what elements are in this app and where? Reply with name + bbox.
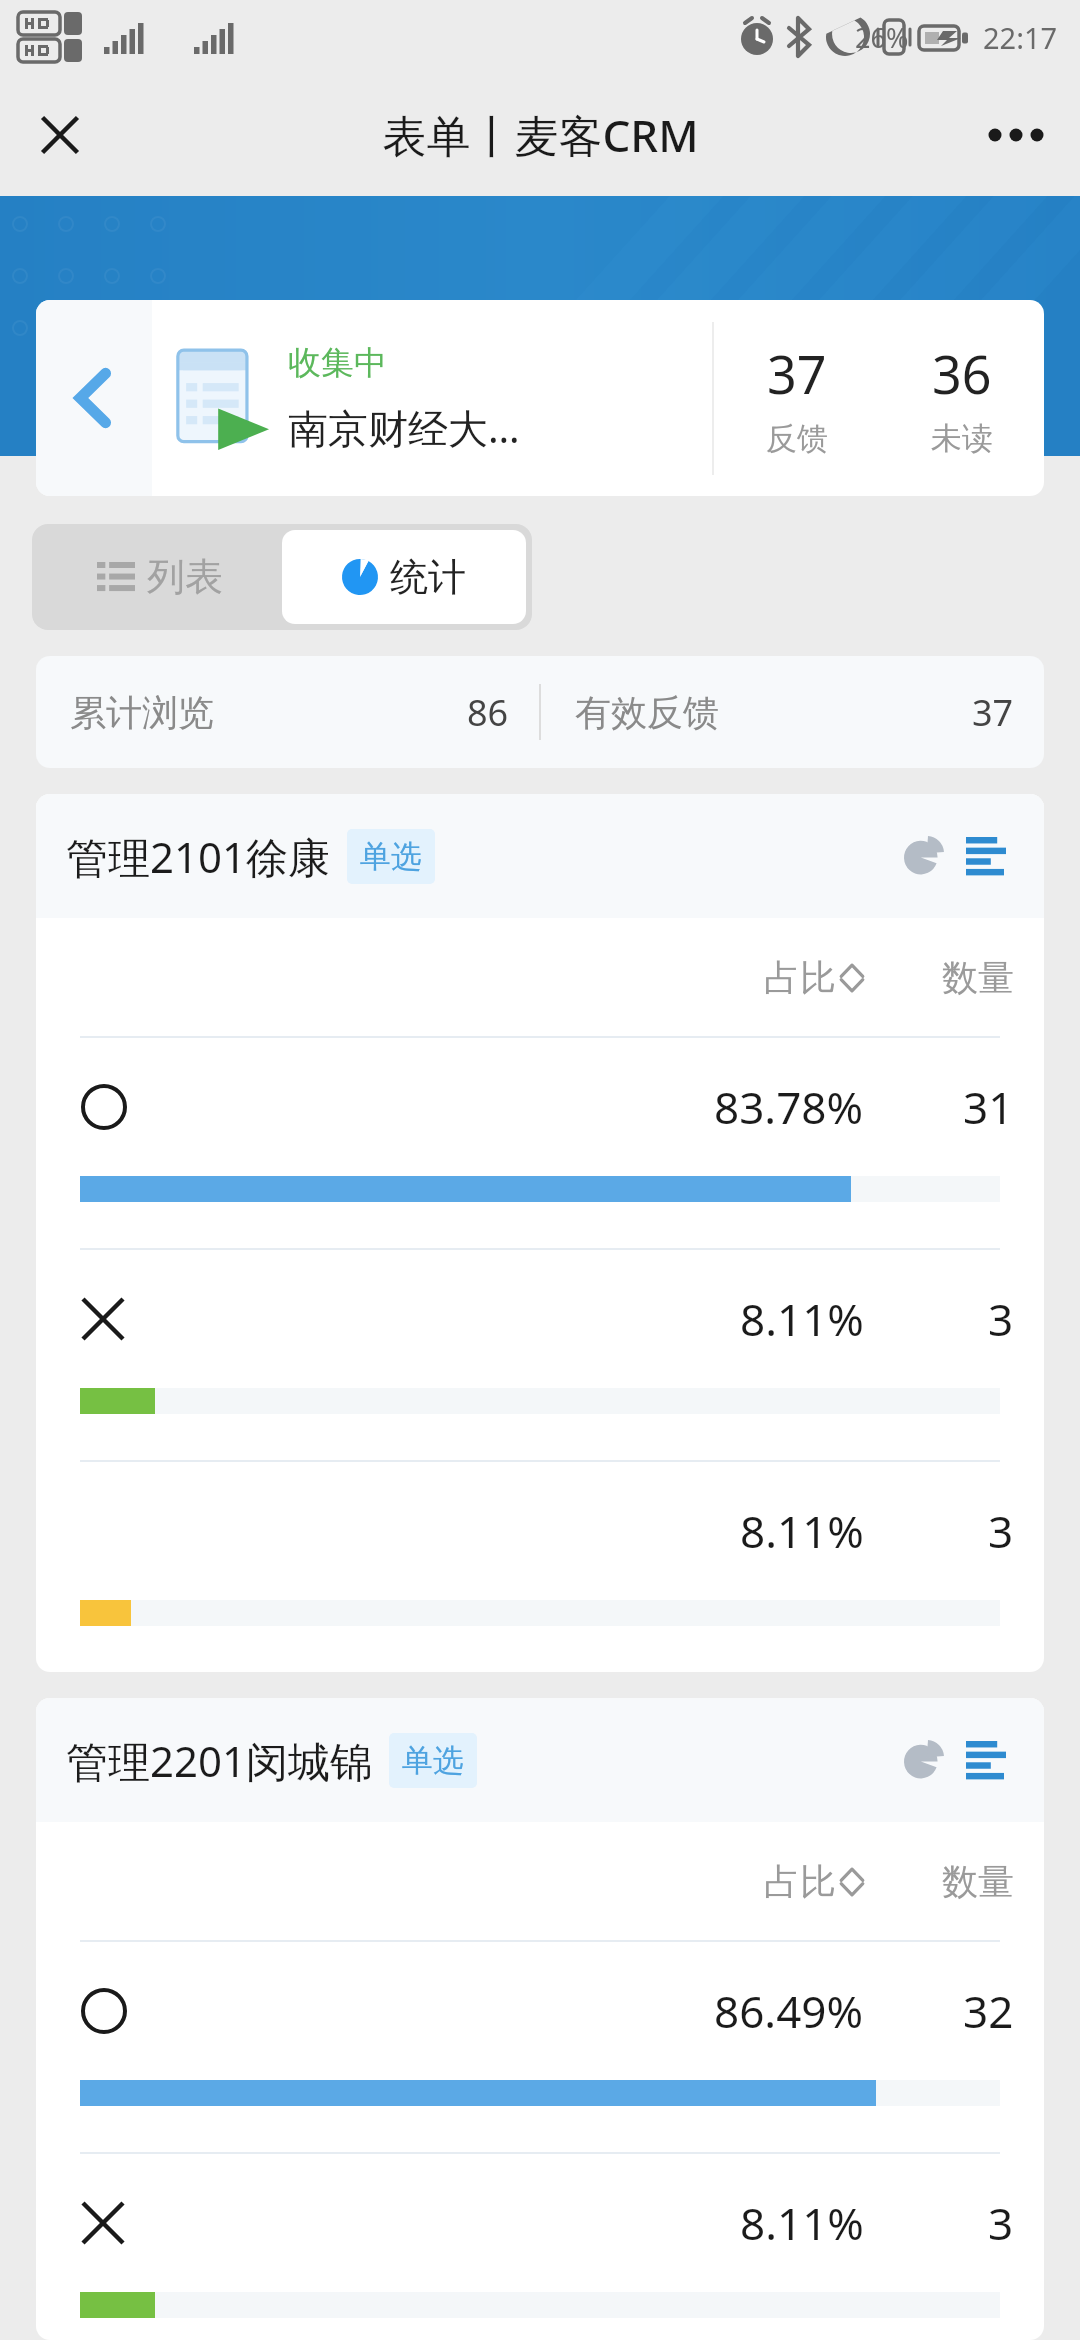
staticText: 单选 (360, 837, 422, 876)
button[interactable]: 8.11% (36, 1462, 1044, 1672)
button[interactable]: 管理2201闵城锦 (66, 1698, 1014, 1822)
button[interactable]: 37 (714, 300, 879, 496)
staticText: 表单丨麦客CRM (382, 105, 699, 165)
staticText: 86 (467, 688, 509, 737)
staticText: 数量 (942, 955, 1014, 1000)
staticText: 32 (963, 1981, 1014, 2041)
staticText: 26% (855, 19, 909, 56)
button[interactable]: Bar chart view (958, 1732, 1014, 1788)
staticText: 3 (988, 1289, 1014, 1349)
button[interactable]: 累计浏览 (36, 656, 539, 768)
staticText: 36 (932, 338, 992, 409)
button[interactable]: 8.11% (36, 2154, 1044, 2340)
button[interactable]: Pie chart view (896, 1732, 952, 1788)
staticText: 37 (767, 338, 827, 409)
button[interactable]: 列表 (38, 530, 282, 624)
button[interactable]: 统计 (282, 530, 526, 624)
staticText: 占比 (764, 1859, 836, 1904)
button[interactable]: Bar chart view (958, 828, 1014, 884)
button[interactable]: Back (36, 300, 152, 496)
staticText: 累计浏览 (70, 690, 214, 735)
button[interactable]: 8.11% (36, 1250, 1044, 1460)
button[interactable]: Close (22, 97, 98, 173)
staticText: 31 (963, 1077, 1014, 1137)
staticText: 3 (988, 2193, 1014, 2253)
staticText: 数量 (942, 1859, 1014, 1904)
button[interactable]: 有效反馈 (541, 656, 1044, 768)
staticText: 占比 (764, 955, 836, 1000)
staticText: 8.11% (740, 1501, 864, 1561)
staticText: 37 (972, 688, 1014, 737)
button[interactable]: Pie chart view (896, 828, 952, 884)
staticText: 收集中 (288, 342, 387, 384)
button[interactable]: 管理2101徐康 (66, 794, 1014, 918)
staticText: 有效反馈 (575, 690, 719, 735)
staticText: 8.11% (740, 2193, 864, 2253)
button[interactable]: 86.49% (36, 1942, 1044, 2152)
staticText: 管理2201闵城锦 (66, 1732, 373, 1789)
button[interactable]: 36 (879, 300, 1044, 496)
staticText: 83.78% (714, 1077, 864, 1137)
staticText: 8.11% (740, 1289, 864, 1349)
staticText: 统计 (390, 553, 466, 601)
staticText: 反馈 (766, 419, 828, 458)
staticText: 单选 (402, 1741, 464, 1780)
staticText: 22:17 (983, 18, 1058, 57)
staticText: 列表 (147, 553, 223, 601)
button[interactable]: More options (976, 95, 1056, 175)
button[interactable]: Back (36, 300, 1044, 496)
button[interactable]: 占比 (634, 1859, 864, 1904)
button[interactable]: 占比 (634, 955, 864, 1000)
staticText: 未读 (931, 419, 993, 458)
staticText: 管理2101徐康 (66, 828, 331, 885)
button[interactable]: 83.78% (36, 1038, 1044, 1248)
staticText: 86.49% (714, 1981, 864, 2041)
staticText: 3 (988, 1501, 1014, 1561)
staticText: 南京财经大… (288, 400, 520, 455)
